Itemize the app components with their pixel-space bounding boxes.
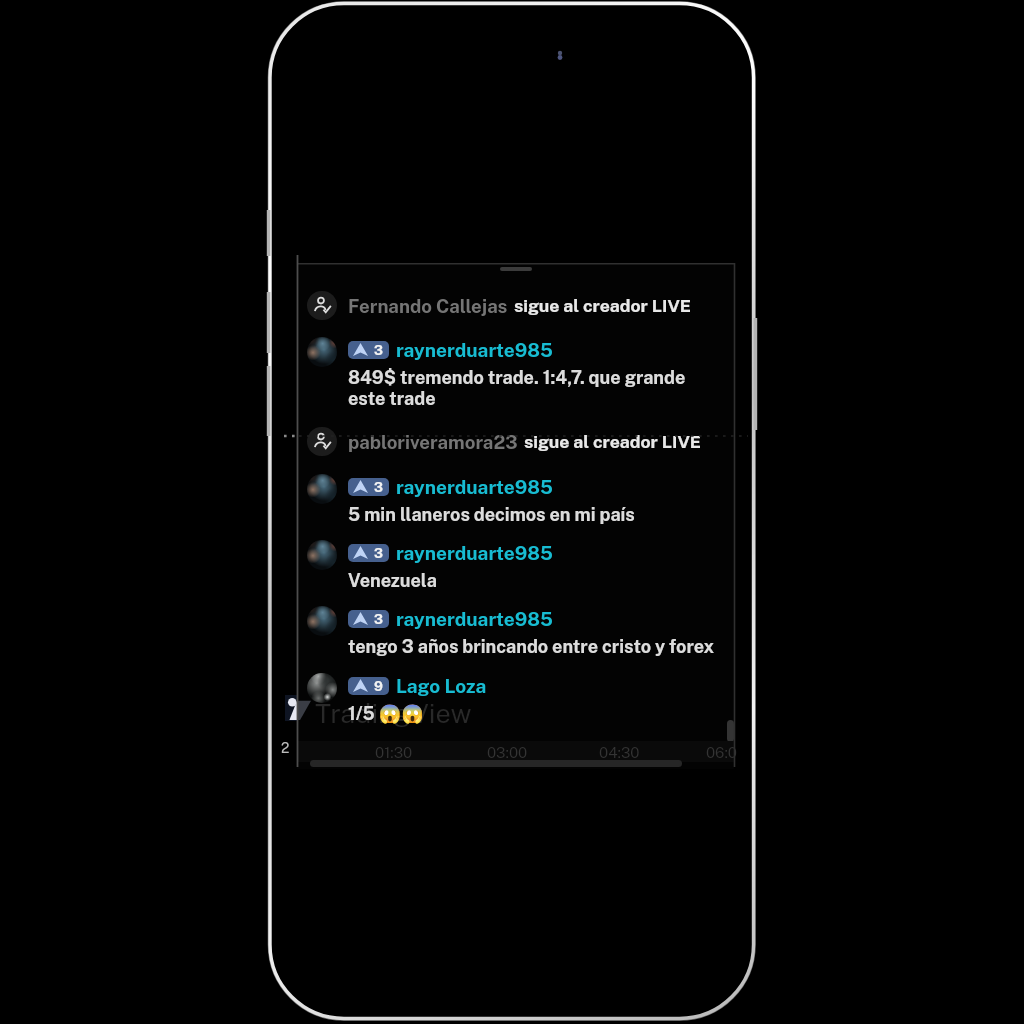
- staticText: raynerduarte985: [396, 476, 553, 498]
- staticText: 849$ tremendo trade. 1:4,7. que grande: [348, 367, 686, 388]
- button[interactable]: Fernando Callejas: [297, 291, 734, 320]
- button[interactable]: 3: [297, 474, 734, 525]
- staticText: 9: [374, 678, 383, 694]
- button[interactable]: pabloriveramora23: [297, 427, 734, 456]
- staticText: 2: [281, 740, 290, 756]
- staticText: pabloriveramora23: [348, 431, 518, 453]
- staticText: sigue al creador LIVE: [524, 431, 701, 452]
- staticText: Venezuela: [348, 570, 437, 591]
- staticText: 3: [374, 611, 383, 627]
- staticText: 3: [374, 342, 383, 358]
- staticText: raynerduarte985: [396, 542, 553, 564]
- staticText: Lago Loza: [396, 675, 487, 697]
- staticText: 3: [374, 479, 383, 495]
- staticText: sigue al creador LIVE: [514, 295, 691, 316]
- staticText: 5 min llaneros decimos en mi país: [348, 504, 635, 525]
- button[interactable]: 3: [297, 337, 734, 409]
- staticText: 01:30: [375, 744, 413, 762]
- button[interactable]: 9: [297, 673, 734, 724]
- staticText: tengo 3 años brincando entre cristo y fo…: [348, 636, 715, 657]
- staticText: este trade: [348, 388, 436, 409]
- button[interactable]: 3: [297, 606, 734, 657]
- staticText: 03:00: [487, 744, 528, 762]
- staticText: 06:0: [706, 744, 737, 762]
- staticText: 1/5 😱😱: [348, 703, 424, 724]
- button[interactable]: Drag handle: [500, 267, 532, 271]
- staticText: raynerduarte985: [396, 339, 553, 361]
- button[interactable]: 3: [297, 540, 734, 591]
- staticText: 3: [374, 545, 383, 561]
- staticText: 04:30: [599, 744, 640, 762]
- staticText: raynerduarte985: [396, 608, 553, 630]
- staticText: Fernando Callejas: [348, 295, 508, 317]
- staticText: TradingView: [315, 697, 472, 729]
